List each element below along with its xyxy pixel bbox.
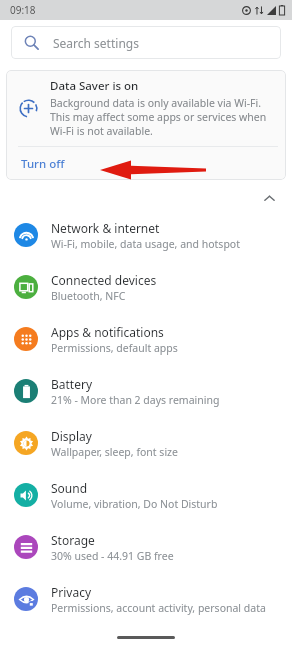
staticText: Turn off xyxy=(21,156,65,172)
staticText: Apps & notifications xyxy=(51,324,164,340)
staticText: Bluetooth, NFC xyxy=(51,289,126,303)
button[interactable]: Display xyxy=(0,417,292,469)
staticText: Display xyxy=(51,428,92,444)
staticText: Search settings xyxy=(53,35,139,51)
button[interactable]: Storage xyxy=(0,521,292,573)
button[interactable]: Connected devices xyxy=(0,261,292,313)
button[interactable]: Network & internet xyxy=(0,209,292,261)
staticText: 09:18 xyxy=(10,3,36,17)
button[interactable]: Collapse xyxy=(260,190,278,206)
staticText: Wallpaper, sleep, font size xyxy=(51,445,178,459)
staticText: Storage xyxy=(51,532,95,548)
staticText: Data Saver is on xyxy=(50,78,139,94)
staticText: Volume, vibration, Do Not Disturb xyxy=(51,497,218,511)
staticText: Permissions, account activity, personal … xyxy=(51,601,266,615)
button[interactable]: Sound xyxy=(0,469,292,521)
button[interactable]: Privacy xyxy=(0,573,292,625)
button[interactable]: Search settings xyxy=(11,26,281,59)
staticText: Battery xyxy=(51,376,93,392)
staticText: Network & internet xyxy=(51,220,160,236)
staticText: Permissions, default apps xyxy=(51,341,178,355)
button[interactable]: Turn off xyxy=(6,147,286,180)
staticText: 30% used - 44.91 GB free xyxy=(51,549,174,563)
button[interactable]: Apps & notifications xyxy=(0,313,292,365)
staticText: Wi-Fi, mobile, data usage, and hotspot xyxy=(51,237,240,251)
staticText: Connected devices xyxy=(51,272,157,288)
button[interactable]: Battery xyxy=(0,365,292,417)
staticText: Background data is only available via Wi… xyxy=(50,96,274,138)
staticText: Privacy xyxy=(51,584,92,600)
staticText: Sound xyxy=(51,480,88,496)
staticText: 21% - More than 2 days remaining xyxy=(51,393,220,407)
